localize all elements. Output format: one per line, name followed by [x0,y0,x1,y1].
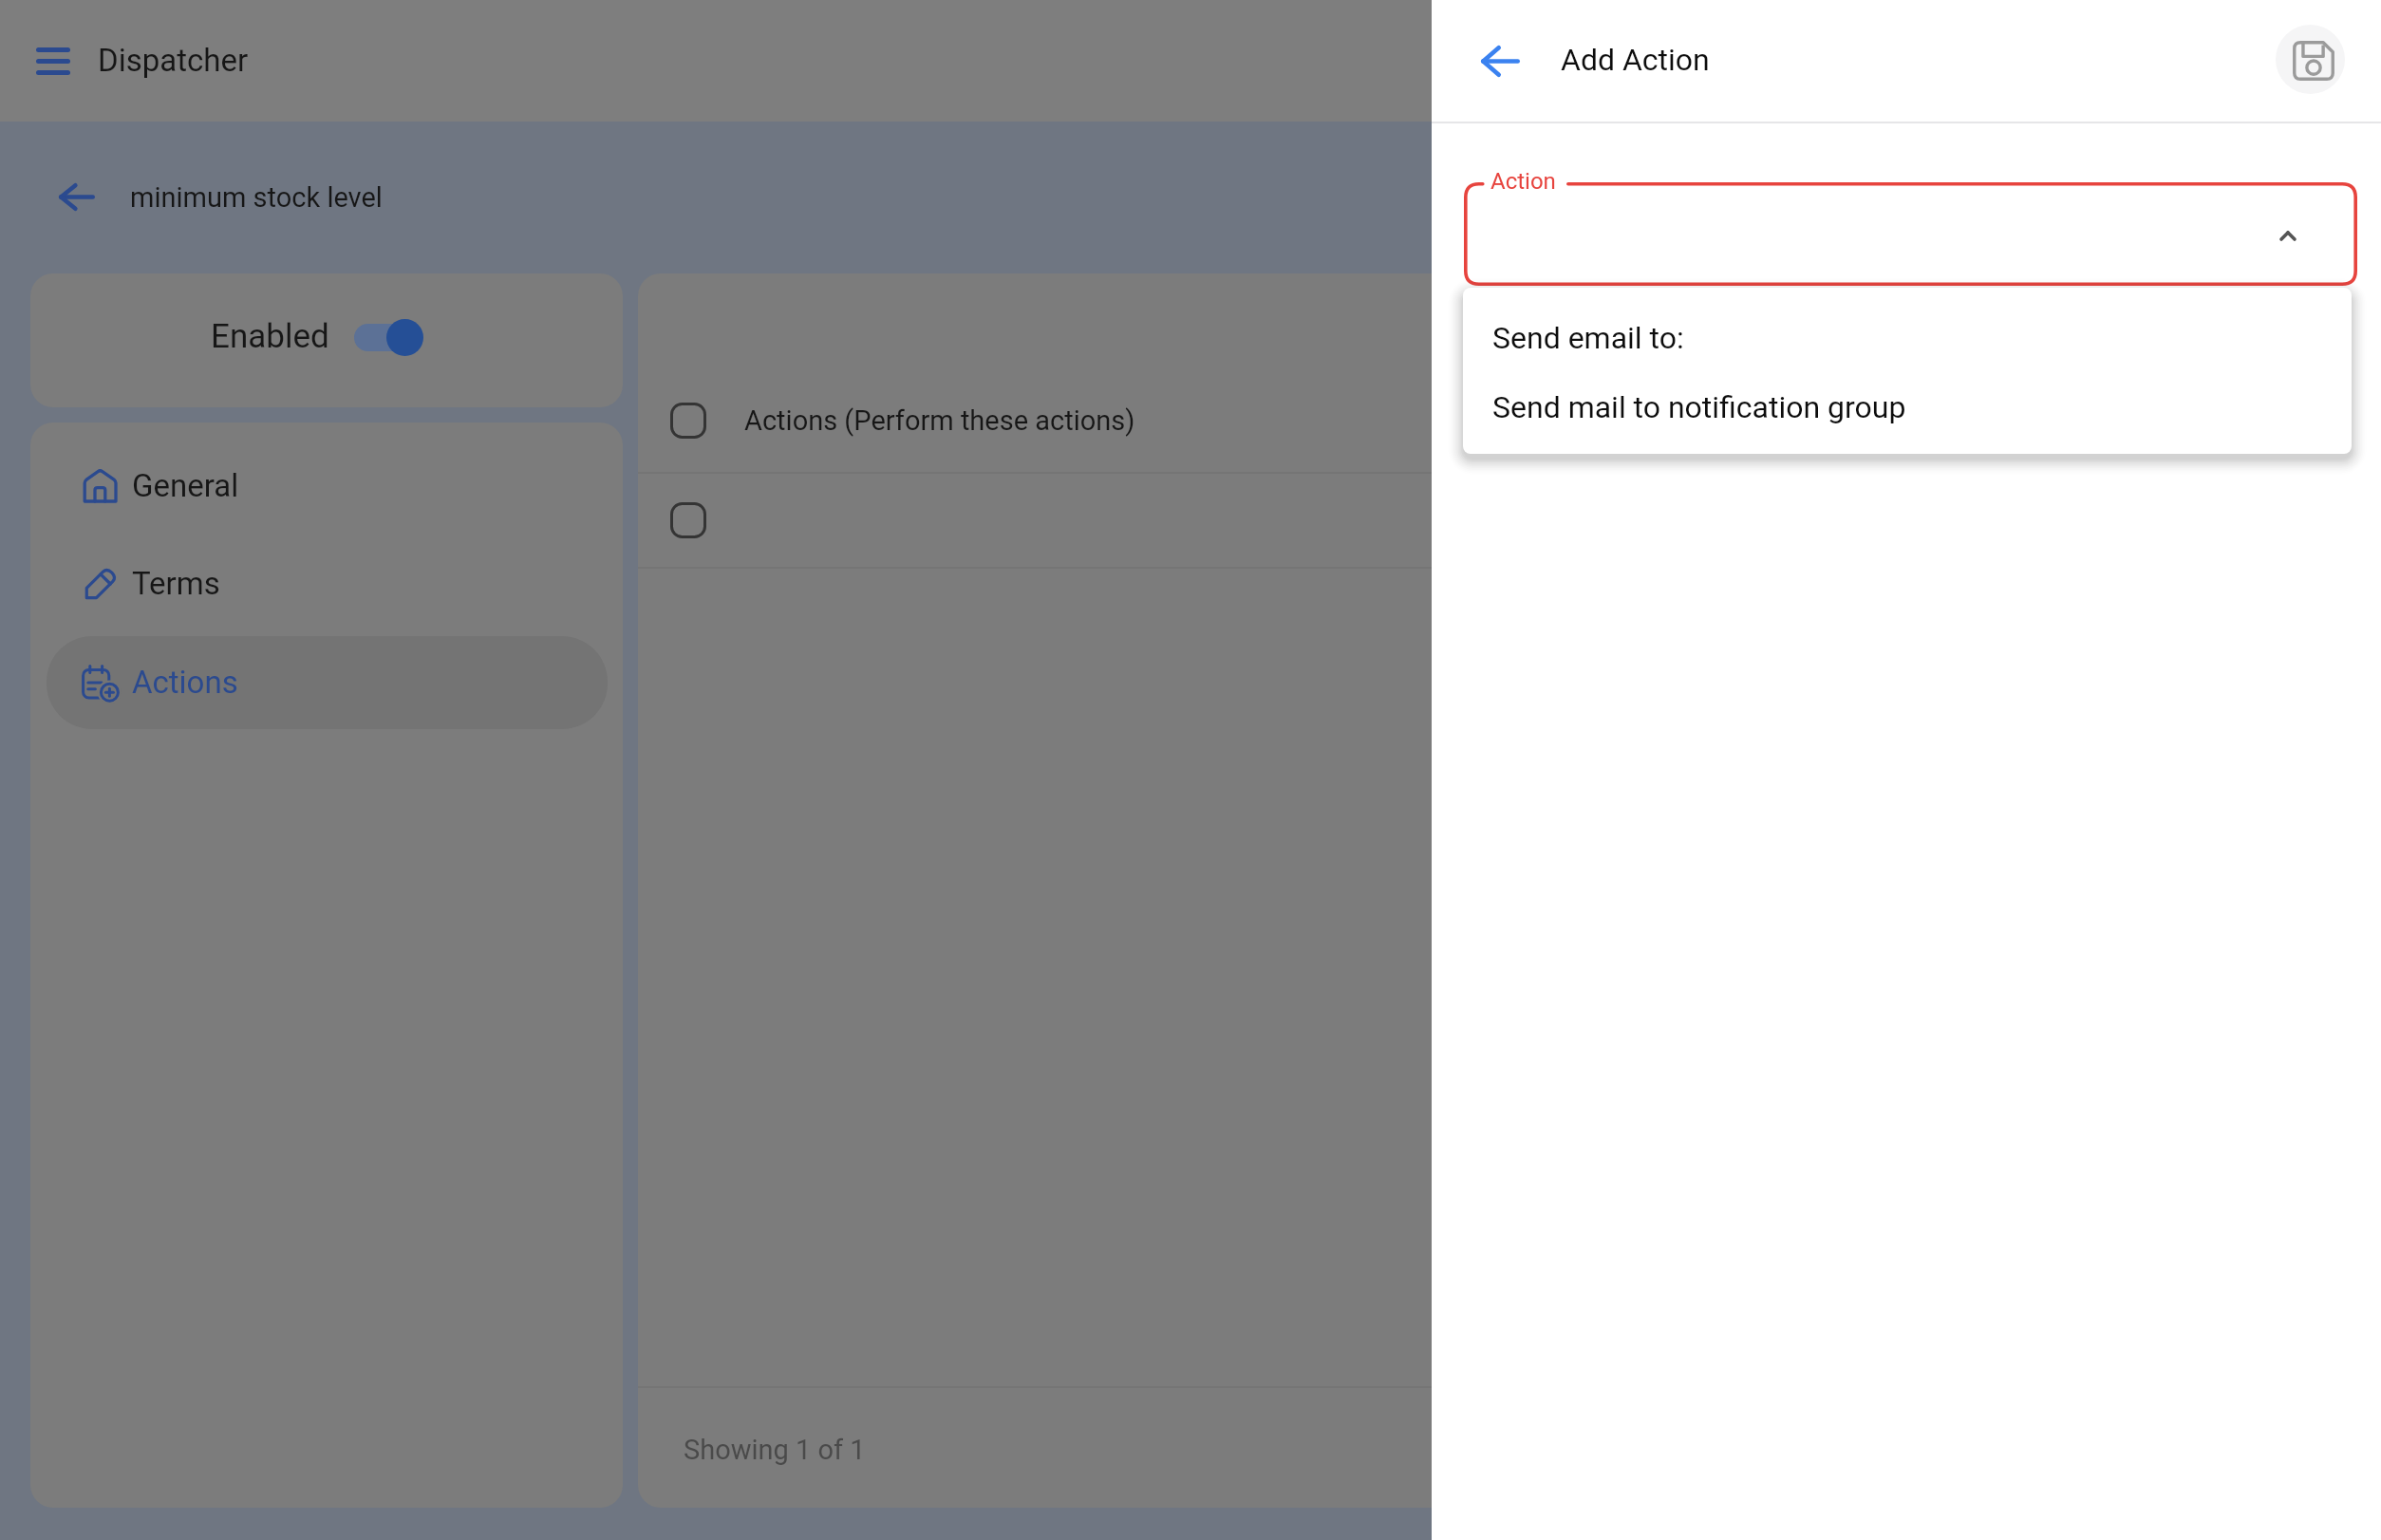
staticText: Actions (Perform these actions) [744,404,1135,437]
staticText: Showing 1 of 1 [684,1434,866,1466]
button[interactable]: Send email to: [1463,303,2352,372]
staticText: Action [1490,168,1556,195]
staticText: Send email to: [1492,320,1684,356]
button[interactable]: Back [43,160,109,227]
button[interactable]: Save [2276,25,2345,94]
staticText: Terms [132,565,220,602]
staticText: minimum stock level [130,181,383,214]
button[interactable]: Terms [47,537,608,630]
button[interactable] [638,473,2351,567]
staticText: Add Action [1561,42,1710,78]
staticText: Dispatcher [98,42,249,79]
button[interactable]: Collapse dropdown [2263,210,2313,259]
staticText: Send mail to notification group [1492,389,1906,425]
staticText: Actions [132,664,238,701]
button[interactable]: Back [1466,27,1532,93]
button[interactable]: Enabled toggle [354,319,423,356]
staticText: General [132,467,239,504]
button[interactable]: General [47,440,608,533]
staticText: Enabled [211,317,329,356]
button[interactable]: Menu [18,28,84,94]
button[interactable]: Actions [47,636,608,729]
button[interactable]: Send mail to notification group [1463,372,2352,441]
button[interactable]: Actions (Perform these actions) [638,368,2351,472]
